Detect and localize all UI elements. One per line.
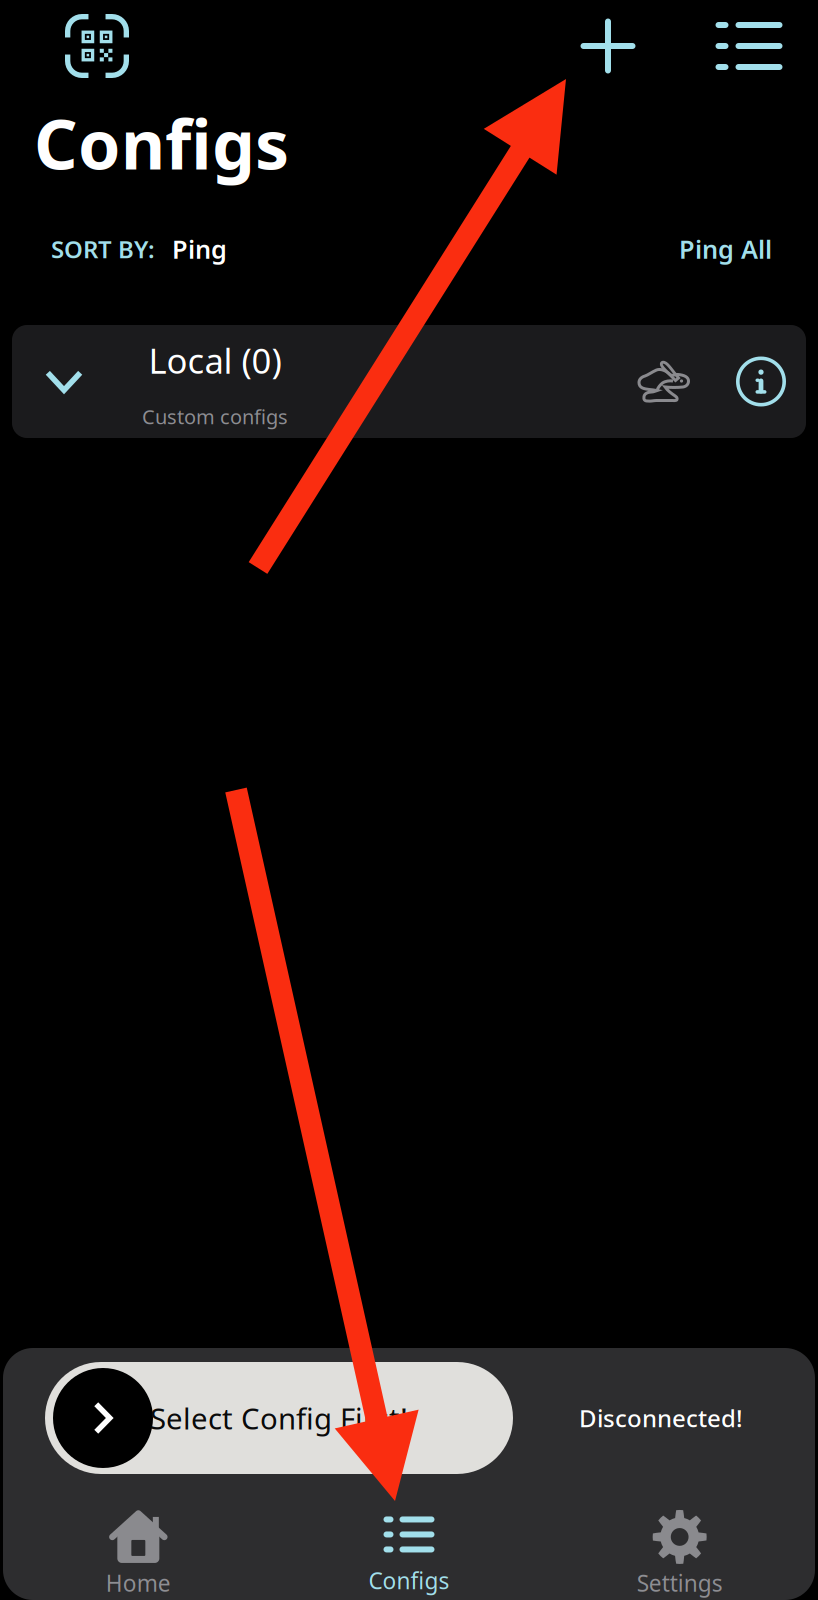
staticText: Local (0) [148,337,281,383]
staticText: Ping All [679,232,772,266]
staticText: SORT BY: [51,233,155,265]
staticText: Custom configs [142,403,288,430]
staticText: Configs [368,1565,449,1595]
staticText: Home [106,1568,171,1598]
button[interactable]: Configs [274,1496,544,1600]
button[interactable]: Local (0) [0,325,818,438]
staticText: Ping [172,232,227,266]
button[interactable]: Add configuration [562,0,654,92]
staticText: Configs [34,98,289,188]
button[interactable]: Sort options [703,0,795,92]
staticText: Select Config First! [150,1398,408,1437]
button[interactable]: Ping All [679,218,772,280]
button[interactable]: Scan QR code [49,0,145,92]
button[interactable]: Select Config First! [45,1362,513,1474]
button[interactable]: Home [3,1496,274,1600]
button[interactable]: Settings [544,1496,815,1600]
staticText: Disconnected! [579,1402,743,1434]
staticText: Settings [637,1568,723,1598]
button[interactable]: Disconnected! [579,1402,743,1434]
button[interactable]: SORT BY: [51,218,227,280]
